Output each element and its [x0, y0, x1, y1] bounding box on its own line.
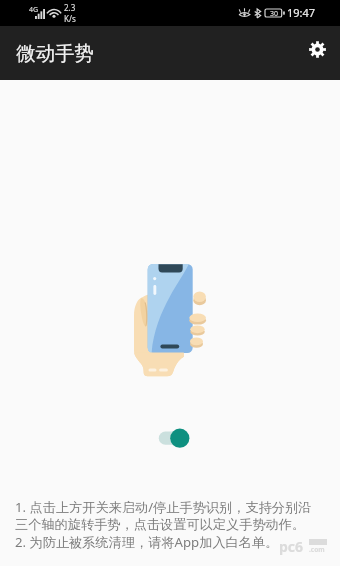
staticText: 30 — [270, 9, 279, 17]
staticText: 微动手势 — [16, 41, 94, 66]
staticText: 2. 为防止被系统清理，请将App加入白名单。 — [15, 533, 279, 551]
staticText: pc6 — [279, 537, 304, 556]
staticText: 2.3 — [64, 2, 76, 13]
staticText: 19:47 — [287, 5, 316, 20]
staticText: 1. 点击上方开关来启动/停止手势识别，支持分别沿三个轴的旋转手势，点击设置可以… — [15, 498, 317, 533]
staticText: .com — [309, 545, 325, 554]
button[interactable]: Settings — [297, 29, 337, 69]
button[interactable]: Gesture recognition switch — [157, 427, 193, 451]
staticText: 4G — [29, 5, 39, 15]
staticText: K/s — [64, 13, 76, 24]
